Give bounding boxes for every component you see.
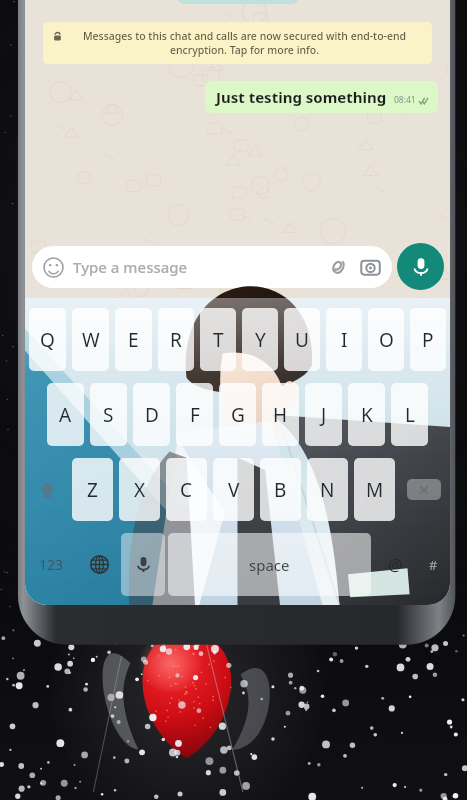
button[interactable]: V (213, 458, 254, 521)
button[interactable]: Attach (326, 256, 348, 278)
staticText: @ (388, 554, 403, 576)
button[interactable]: E (115, 308, 152, 371)
staticText: J (321, 402, 327, 428)
staticText: 123 (39, 555, 64, 574)
button[interactable]: # (416, 527, 450, 602)
staticText: P (422, 327, 434, 353)
staticText: T (213, 327, 224, 353)
button[interactable]: Camera (360, 257, 381, 278)
button[interactable]: Backspace (398, 452, 450, 527)
button[interactable]: U (284, 308, 320, 371)
button[interactable]: B (260, 458, 301, 521)
staticText: B (274, 477, 287, 503)
button[interactable]: F (176, 383, 213, 446)
button[interactable]: Q (29, 308, 66, 371)
staticText: G (231, 402, 245, 428)
button[interactable]: W (72, 308, 109, 371)
button[interactable]: N (307, 458, 348, 521)
staticText: R (170, 327, 182, 353)
staticText: K (361, 402, 373, 428)
staticText: 08:41 (394, 94, 416, 106)
staticText: E (128, 327, 139, 353)
staticText: space (249, 555, 290, 575)
button[interactable]: Voice message (397, 243, 444, 290)
button[interactable]: J (305, 383, 342, 446)
button[interactable]: O (368, 308, 404, 371)
button[interactable]: G (219, 383, 256, 446)
staticText: V (228, 477, 240, 503)
button[interactable]: Change language (77, 527, 121, 602)
staticText: Z (87, 477, 98, 503)
button[interactable]: C (166, 458, 207, 521)
button[interactable]: space (168, 533, 371, 596)
staticText: M (366, 477, 384, 503)
staticText: N (320, 477, 335, 503)
button[interactable]: Just testing something (205, 81, 438, 113)
button[interactable]: K (348, 383, 385, 446)
staticText: Y (255, 327, 266, 353)
button[interactable]: S (90, 383, 127, 446)
button[interactable]: M (354, 458, 395, 521)
button[interactable]: Type a message (32, 246, 392, 288)
staticText: Q (40, 327, 55, 353)
staticText: O (379, 327, 394, 353)
staticText: I (341, 327, 348, 353)
button[interactable]: I (326, 308, 362, 371)
button[interactable]: P (410, 308, 446, 371)
button[interactable]: Z (72, 458, 113, 521)
staticText: U (295, 327, 309, 353)
button[interactable]: Messages to this chat and calls are now … (43, 22, 432, 64)
staticText: S (103, 402, 114, 428)
staticText: L (405, 402, 415, 428)
staticText: W (82, 327, 100, 353)
staticText: F (190, 402, 200, 428)
staticText: Type a message (73, 257, 326, 277)
staticText: C (180, 477, 193, 503)
button[interactable]: D (133, 383, 170, 446)
button[interactable]: 123 (25, 527, 77, 602)
button[interactable]: R (158, 308, 194, 371)
staticText: Just testing something (216, 87, 387, 107)
button[interactable]: @ (374, 527, 416, 602)
button[interactable]: X (119, 458, 160, 521)
staticText: # (429, 556, 438, 574)
button[interactable]: Shift (25, 452, 69, 527)
button[interactable]: L (391, 383, 428, 446)
staticText: D (145, 402, 159, 428)
staticText: X (134, 477, 146, 503)
button[interactable]: T (200, 308, 236, 371)
button[interactable]: H (262, 383, 299, 446)
button[interactable]: Voice input (121, 533, 165, 596)
button[interactable]: Y (242, 308, 278, 371)
staticText: Messages to this chat and calls are now … (67, 29, 422, 57)
button[interactable]: A (47, 383, 84, 446)
staticText: H (273, 402, 288, 428)
staticText: A (59, 402, 72, 428)
